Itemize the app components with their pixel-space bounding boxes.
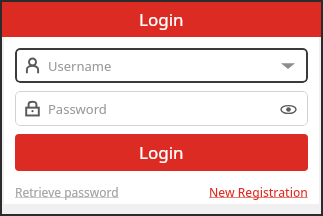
button[interactable]: New Registration xyxy=(209,184,308,200)
button[interactable]: Username xyxy=(15,48,308,83)
button[interactable]: Password xyxy=(15,91,308,126)
button[interactable]: Show password xyxy=(277,98,299,120)
staticText: Login xyxy=(139,8,184,31)
staticText: Username xyxy=(48,57,112,75)
button[interactable]: Retrieve password xyxy=(15,184,119,200)
staticText: Password xyxy=(48,100,107,118)
staticText: Retrieve password xyxy=(15,184,119,200)
button[interactable]: Show saved accounts xyxy=(277,55,299,77)
staticText: Login xyxy=(139,141,184,164)
staticText: New Registration xyxy=(209,184,308,200)
button[interactable]: Login xyxy=(15,134,308,171)
